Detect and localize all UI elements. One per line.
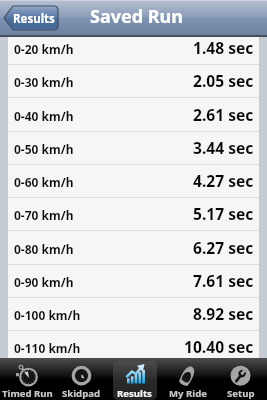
button[interactable]: Setup bbox=[214, 358, 267, 400]
staticText: 3.44 sec bbox=[193, 137, 254, 158]
button[interactable]: 0-90 km/h bbox=[8, 265, 259, 298]
staticText: 0-50 km/h bbox=[14, 141, 74, 157]
staticText: 0-20 km/h bbox=[14, 41, 74, 57]
button[interactable]: 0-70 km/h bbox=[8, 198, 259, 231]
staticText: 4.27 sec bbox=[193, 170, 254, 191]
staticText: 0-40 km/h bbox=[14, 108, 74, 124]
staticText: 10.40 sec bbox=[184, 336, 254, 357]
button[interactable]: 0-120 km/h bbox=[8, 365, 259, 398]
button[interactable]: 0-100 km/h bbox=[8, 298, 259, 331]
staticText: 5.17 sec bbox=[193, 203, 254, 224]
staticText: My Ride bbox=[169, 387, 207, 400]
button[interactable]: My Ride bbox=[161, 358, 214, 400]
staticText: Setup bbox=[227, 387, 255, 400]
staticText: 7.61 sec bbox=[193, 270, 254, 291]
button[interactable]: Results bbox=[108, 358, 161, 400]
button[interactable]: 0-80 km/h bbox=[8, 232, 259, 265]
staticText: Results bbox=[117, 387, 152, 400]
staticText: 0-80 km/h bbox=[14, 241, 74, 257]
staticText: 6.27 sec bbox=[193, 237, 254, 258]
button[interactable]: Skidpad bbox=[54, 358, 108, 400]
button[interactable]: 0-40 km/h bbox=[8, 99, 259, 132]
staticText: 2.05 sec bbox=[193, 70, 254, 91]
staticText: 0-110 km/h bbox=[14, 340, 81, 356]
staticText: 1.48 sec bbox=[193, 37, 254, 58]
staticText: Skidpad bbox=[62, 387, 101, 400]
button[interactable]: 0-60 km/h bbox=[8, 165, 259, 198]
button[interactable]: Results bbox=[4, 6, 58, 30]
staticText: 0-60 km/h bbox=[14, 174, 74, 190]
staticText: Results bbox=[13, 11, 55, 27]
staticText: 0-90 km/h bbox=[14, 274, 74, 290]
button[interactable]: Timed Run bbox=[0, 358, 54, 400]
button[interactable]: 0-110 km/h bbox=[8, 331, 259, 364]
staticText: 0-120 km/h bbox=[14, 374, 81, 390]
staticText: 0-70 km/h bbox=[14, 207, 74, 223]
staticText: 12.10 sec bbox=[184, 370, 254, 391]
staticText: Timed Run bbox=[2, 387, 53, 400]
staticText: 2.61 sec bbox=[193, 104, 254, 125]
staticText: 0-30 km/h bbox=[14, 74, 74, 90]
button[interactable]: 0-30 km/h bbox=[8, 65, 259, 98]
button[interactable]: 0-50 km/h bbox=[8, 132, 259, 165]
staticText: Saved Run bbox=[90, 4, 183, 29]
staticText: 0-100 km/h bbox=[14, 307, 81, 323]
button[interactable]: 0-20 km/h bbox=[8, 32, 259, 65]
staticText: 8.92 sec bbox=[193, 303, 254, 324]
